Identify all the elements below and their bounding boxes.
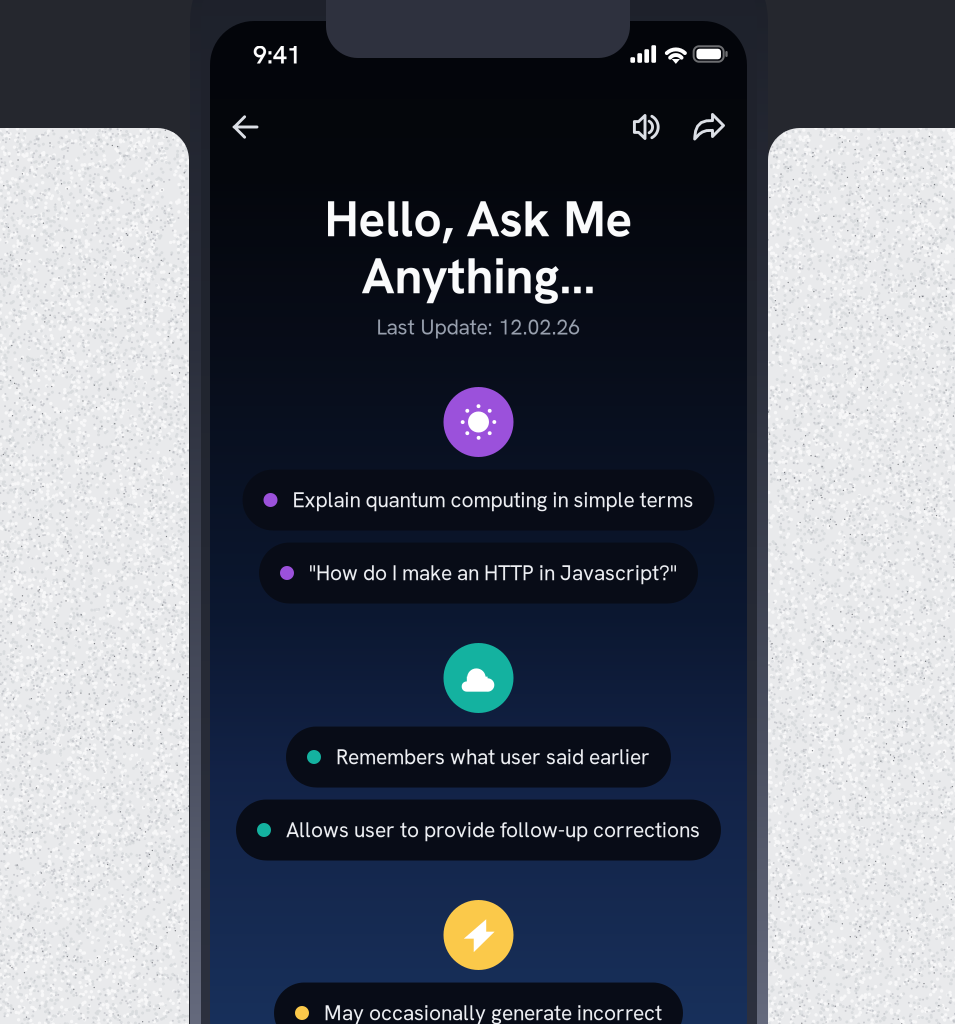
button[interactable]: Allows user to provide follow-up correct… — [236, 799, 721, 860]
staticText: Last Update: 12.02.26 — [376, 313, 580, 341]
staticText: Allows user to provide follow-up correct… — [286, 816, 700, 844]
staticText: May occasionally generate incorrect — [324, 999, 662, 1024]
button[interactable]: Read aloud — [629, 106, 673, 148]
button[interactable]: May occasionally generate incorrect — [274, 982, 683, 1024]
staticText: Anything... — [361, 244, 595, 308]
button[interactable]: Explain quantum computing in simple term… — [242, 469, 714, 530]
staticText: 9:41 — [253, 39, 301, 71]
button[interactable]: Remembers what user said earlier — [286, 726, 671, 787]
staticText: Explain quantum computing in simple term… — [292, 486, 693, 514]
staticText: Hello, Ask Me — [324, 187, 632, 251]
staticText: "How do I make an HTTP in Javascript?" — [309, 559, 677, 587]
staticText: Remembers what user said earlier — [336, 743, 650, 771]
button[interactable]: "How do I make an HTTP in Javascript?" — [259, 542, 698, 603]
button[interactable]: Back — [224, 106, 268, 148]
button[interactable]: Share — [688, 106, 732, 148]
